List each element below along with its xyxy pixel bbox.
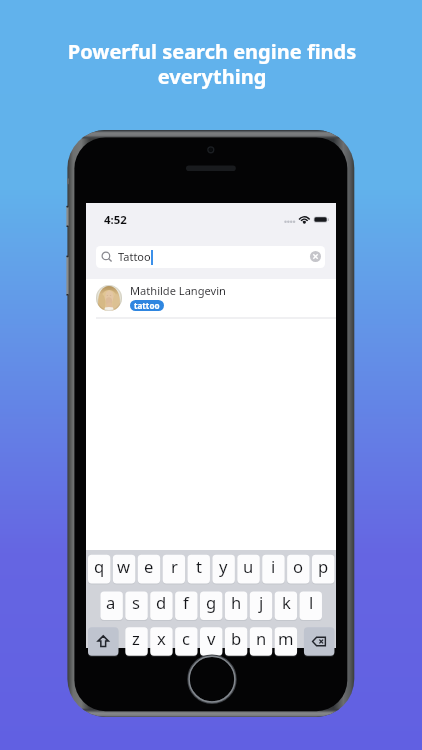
button[interactable]: g — [200, 591, 222, 620]
button[interactable]: Shift — [88, 627, 118, 656]
button[interactable]: s — [125, 591, 147, 620]
staticText: s — [132, 591, 140, 614]
staticText: h — [231, 591, 242, 614]
button[interactable]: e — [138, 555, 160, 584]
button[interactable]: Mathilde Langevin — [86, 279, 336, 317]
staticText: Mathilde Langevin — [130, 283, 226, 298]
staticText: y — [219, 555, 228, 578]
staticText: e — [144, 555, 154, 578]
button[interactable]: v — [200, 627, 222, 656]
button[interactable]: f — [175, 591, 197, 620]
staticText: b — [231, 627, 242, 650]
staticText: f — [183, 591, 189, 614]
staticText: z — [132, 627, 140, 650]
staticText: Powerful search engine finds everything — [31, 38, 393, 90]
staticText: i — [271, 555, 276, 578]
button[interactable]: d — [150, 591, 172, 620]
button[interactable]: l — [300, 591, 322, 620]
staticText: d — [156, 591, 167, 614]
button[interactable]: z — [125, 627, 147, 656]
staticText: p — [318, 555, 329, 578]
staticText: r — [171, 555, 178, 578]
button[interactable]: u — [237, 555, 259, 584]
staticText: l — [309, 591, 314, 614]
staticText: Tattoo — [118, 249, 151, 264]
staticText: t — [196, 555, 202, 578]
staticText: x — [157, 627, 166, 650]
button[interactable]: o — [287, 555, 309, 584]
staticText: a — [106, 591, 116, 614]
staticText: g — [206, 591, 217, 614]
staticText: 4:52 — [104, 212, 127, 228]
button[interactable]: b — [225, 627, 247, 656]
staticText: v — [207, 627, 216, 650]
button[interactable]: x — [150, 627, 172, 656]
button[interactable]: Clear search — [310, 251, 321, 262]
staticText: tattoo — [134, 300, 160, 311]
staticText: m — [278, 627, 294, 650]
button[interactable]: a — [100, 591, 122, 620]
button[interactable]: w — [113, 555, 135, 584]
button[interactable]: j — [250, 591, 272, 620]
button[interactable]: i — [262, 555, 284, 584]
button[interactable]: k — [275, 591, 297, 620]
staticText: q — [94, 555, 105, 578]
staticText: u — [243, 555, 254, 578]
staticText: j — [259, 591, 264, 614]
button[interactable]: p — [312, 555, 334, 584]
button[interactable]: tattoo — [130, 300, 164, 311]
staticText: n — [256, 627, 267, 650]
staticText: k — [282, 591, 291, 614]
button[interactable]: r — [163, 555, 185, 584]
button[interactable]: q — [88, 555, 110, 584]
button[interactable]: h — [225, 591, 247, 620]
staticText: w — [117, 555, 131, 578]
other: Status icons — [282, 214, 330, 228]
button[interactable]: Tattoo — [96, 246, 325, 268]
button[interactable]: c — [175, 627, 197, 656]
button[interactable]: Backspace — [304, 627, 334, 656]
button[interactable]: t — [188, 555, 210, 584]
button[interactable]: y — [212, 555, 234, 584]
button[interactable]: m — [275, 627, 297, 656]
staticText: o — [293, 555, 304, 578]
staticText: c — [182, 627, 190, 650]
button[interactable]: n — [250, 627, 272, 656]
